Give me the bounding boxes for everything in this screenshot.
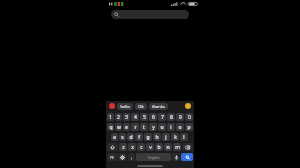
button[interactable]: 5	[140, 113, 148, 121]
button[interactable]: 3	[123, 113, 130, 121]
staticText: h	[155, 134, 159, 141]
button[interactable]: 7	[158, 113, 166, 121]
staticText: y	[152, 124, 155, 131]
button[interactable]: h	[153, 133, 161, 141]
button[interactable]: s	[119, 133, 126, 141]
staticText: p	[187, 124, 191, 131]
button[interactable]: Backspace	[182, 143, 193, 151]
button[interactable]: 4	[131, 113, 139, 121]
staticText: English	[148, 155, 160, 160]
staticText: 1	[109, 114, 112, 121]
button[interactable]: f	[135, 133, 143, 141]
staticText: 3	[125, 114, 128, 121]
button[interactable]: e	[123, 123, 130, 131]
staticText: 7	[161, 114, 164, 121]
button[interactable]: g	[144, 133, 152, 141]
button[interactable]: Space	[136, 153, 171, 161]
staticText: g	[146, 134, 150, 141]
button[interactable]: t	[140, 123, 148, 131]
staticText: hello	[120, 104, 130, 109]
button[interactable]: Voice input	[172, 153, 180, 161]
staticText: 5	[143, 114, 146, 121]
button[interactable]: k	[171, 133, 179, 141]
staticText: c	[140, 144, 143, 151]
staticText: x	[131, 144, 134, 151]
staticText: e	[125, 124, 128, 131]
button[interactable]: o	[176, 123, 184, 131]
staticText: o	[178, 124, 182, 131]
staticText: t	[143, 124, 145, 131]
staticText: Ok	[138, 104, 144, 109]
button[interactable]: 8	[167, 113, 175, 121]
staticText: thanks	[152, 104, 165, 109]
button[interactable]: u	[158, 123, 166, 131]
button[interactable]: w	[115, 123, 122, 131]
button[interactable]: 9	[176, 113, 184, 121]
button[interactable]: a	[111, 133, 118, 141]
staticText: 2	[117, 114, 120, 121]
staticText: z	[122, 144, 125, 151]
staticText: a	[113, 134, 116, 141]
staticText: ?1	[110, 155, 114, 160]
staticText: 8	[170, 114, 173, 121]
button[interactable]: l	[180, 133, 188, 141]
button[interactable]: d	[127, 133, 134, 141]
button[interactable]: 0	[185, 113, 193, 121]
button[interactable]: Shift	[107, 143, 118, 151]
staticText: v	[149, 144, 152, 151]
staticText: j	[165, 134, 167, 141]
button[interactable]: z	[119, 143, 127, 151]
staticText: m	[175, 144, 180, 151]
button[interactable]: Search	[181, 153, 193, 161]
button[interactable]: m	[173, 143, 181, 151]
button[interactable]: Record	[109, 103, 115, 109]
button[interactable]	[111, 10, 189, 19]
button[interactable]: ,	[128, 153, 135, 161]
button[interactable]: i	[167, 123, 175, 131]
button[interactable]: b	[155, 143, 163, 151]
staticText: f	[138, 134, 140, 141]
button[interactable]: Settings	[118, 153, 127, 161]
button[interactable]: c	[137, 143, 145, 151]
staticText: b	[157, 144, 161, 151]
button[interactable]: 6	[149, 113, 157, 121]
button[interactable]: hello	[117, 103, 133, 110]
button[interactable]: Emoji	[185, 103, 191, 109]
button[interactable]: j	[162, 133, 170, 141]
button[interactable]: y	[149, 123, 157, 131]
staticText: 4	[134, 114, 137, 121]
staticText: l	[183, 134, 185, 141]
staticText: q	[109, 124, 113, 131]
staticText: 9	[179, 114, 182, 121]
staticText: u	[160, 124, 164, 131]
staticText: ,	[131, 154, 133, 161]
button[interactable]: x	[128, 143, 136, 151]
button[interactable]: r	[131, 123, 139, 131]
staticText: w	[117, 124, 121, 131]
staticText: r	[134, 124, 137, 131]
button[interactable]: v	[146, 143, 154, 151]
staticText: 6	[152, 114, 155, 121]
button[interactable]: q	[107, 123, 114, 131]
button[interactable]: p	[185, 123, 193, 131]
button[interactable]: 2	[115, 113, 122, 121]
button[interactable]: Ok	[135, 103, 147, 110]
button[interactable]: 1	[107, 113, 114, 121]
button[interactable]: ?1	[107, 153, 117, 161]
button[interactable]: thanks	[149, 103, 168, 110]
staticText: s	[121, 134, 124, 141]
staticText: 0	[188, 114, 191, 121]
staticText: d	[129, 134, 133, 141]
staticText: k	[174, 134, 177, 141]
button[interactable]: n	[164, 143, 172, 151]
staticText: i	[170, 124, 172, 131]
staticText: n	[166, 144, 170, 151]
